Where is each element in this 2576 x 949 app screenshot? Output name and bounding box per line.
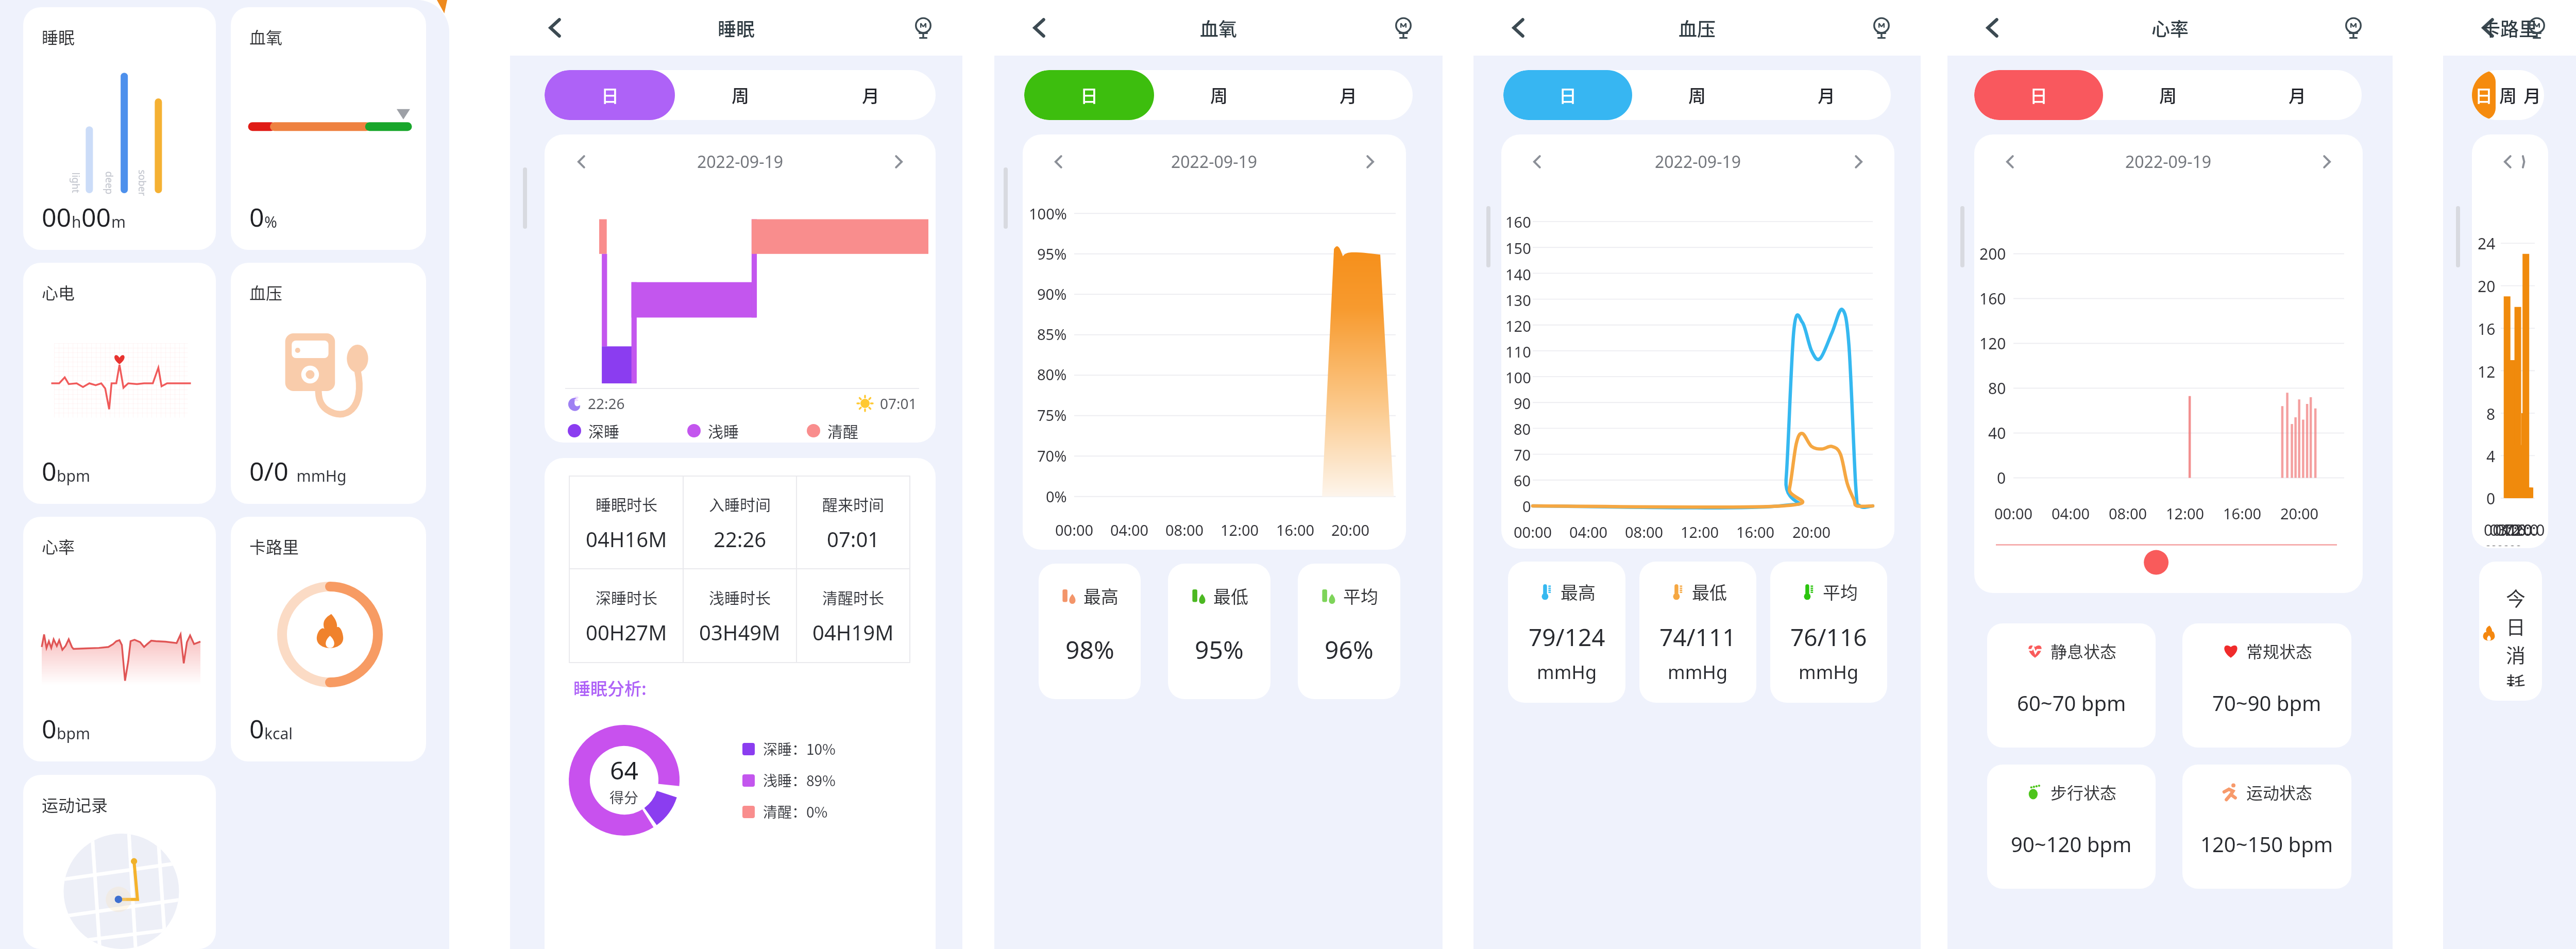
button[interactable]: Previous day <box>1045 148 1072 175</box>
button[interactable]: 最低 <box>1639 562 1756 703</box>
staticText: 最高 <box>1561 579 1596 604</box>
button[interactable]: Previous day <box>1524 148 1551 175</box>
button[interactable]: 周 <box>1632 70 1761 120</box>
button[interactable]: Previous day <box>2495 148 2521 175</box>
button[interactable]: 日 <box>1503 70 1632 120</box>
button[interactable]: Next day <box>2313 148 2340 175</box>
staticText: 20 <box>2478 276 2496 297</box>
button[interactable]: 月 <box>2232 70 2362 120</box>
button[interactable]: 日 <box>2472 70 2496 120</box>
button[interactable]: Next day <box>885 148 912 175</box>
staticText: 70 <box>1514 445 1531 465</box>
button[interactable]: 今日消耗 <box>2479 562 2542 701</box>
button[interactable]: 心电 <box>23 263 216 504</box>
button[interactable]: 日 <box>1024 70 1154 120</box>
staticText: bpm <box>57 723 90 744</box>
staticText: 74/111 <box>1659 621 1736 653</box>
staticText: 100 <box>1505 367 1531 387</box>
staticText: 血压 <box>249 280 283 304</box>
button[interactable]: 血氧 <box>231 7 426 250</box>
button[interactable]: Back <box>539 11 572 44</box>
staticText: 16:00 <box>2223 503 2262 523</box>
button[interactable]: Previous day <box>1997 148 2024 175</box>
staticText: 睡眠分析: <box>573 675 647 700</box>
staticText: 日 <box>2030 82 2047 108</box>
button[interactable]: 周 <box>1154 70 1283 120</box>
staticText: 08:00 <box>2109 503 2147 523</box>
staticText: 00 <box>81 199 111 234</box>
staticText: 入睡时间 <box>709 493 771 515</box>
staticText: 2022-09-19 <box>1171 150 1258 173</box>
staticText: 130 <box>1505 290 1531 310</box>
button[interactable]: Measure <box>1865 11 1898 44</box>
button[interactable]: 常规状态 <box>2182 623 2351 748</box>
staticText: 深睡 <box>588 419 619 442</box>
staticText: 深睡时长 <box>596 586 657 608</box>
button[interactable]: 月 <box>1761 70 1891 120</box>
button[interactable]: 心率 <box>23 517 216 761</box>
button[interactable]: Back <box>1976 11 2009 44</box>
button[interactable]: 日 <box>545 70 675 120</box>
button[interactable]: 平均 <box>1298 564 1400 699</box>
button[interactable]: Next day <box>2521 148 2526 175</box>
button[interactable]: 运动状态 <box>2182 765 2351 889</box>
button[interactable]: 月 <box>805 70 936 120</box>
staticText: 0 <box>42 453 57 488</box>
staticText: 日 <box>601 82 619 108</box>
button[interactable]: Back <box>1023 11 1056 44</box>
staticText: 清醒：0% <box>763 801 828 822</box>
staticText: 12:00 <box>2502 519 2536 546</box>
button[interactable]: Previous day <box>568 148 595 175</box>
button[interactable]: 静息状态 <box>1987 623 2156 748</box>
staticText: 16:00 <box>2508 519 2542 546</box>
staticText: 16 <box>2478 318 2496 340</box>
button[interactable]: 步行状态 <box>1987 765 2156 889</box>
staticText: 12:00 <box>2166 503 2205 523</box>
button[interactable]: 运动记录 <box>23 775 216 949</box>
button[interactable]: 最高 <box>1508 562 1625 703</box>
button[interactable]: Next day <box>1845 148 1872 175</box>
button[interactable]: 最高 <box>1039 564 1141 699</box>
staticText: 04:00 <box>1569 522 1608 542</box>
staticText: 80 <box>1514 419 1531 439</box>
staticText: 07:01 <box>880 394 917 413</box>
button[interactable]: 睡眠 <box>23 7 216 250</box>
staticText: 0 <box>249 199 264 234</box>
staticText: mmHg <box>289 465 347 486</box>
button[interactable]: 血压 <box>231 263 426 504</box>
button[interactable]: Back <box>2472 11 2505 44</box>
button[interactable]: 月 <box>2520 70 2544 120</box>
button[interactable]: 最低 <box>1168 564 1270 699</box>
button[interactable]: 周 <box>675 70 805 120</box>
staticText: 07:00 <box>2496 519 2530 546</box>
button[interactable]: Measure <box>1387 11 1420 44</box>
button[interactable]: Back <box>1502 11 1535 44</box>
staticText: 周 <box>1210 82 1228 108</box>
staticText: 12 <box>2478 361 2496 382</box>
staticText: 64 <box>610 753 638 787</box>
staticText: 心率 <box>42 534 75 558</box>
button[interactable]: 周 <box>2496 70 2520 120</box>
button[interactable]: 平均 <box>1770 562 1887 703</box>
button[interactable]: Measure <box>2337 11 2370 44</box>
staticText: 12:00 <box>1221 520 1259 540</box>
staticText: 浅睡 <box>708 419 739 442</box>
staticText: 月 <box>1818 82 1835 108</box>
button[interactable]: Next day <box>1357 148 1383 175</box>
button[interactable]: 卡路里 <box>231 517 426 761</box>
staticText: 120 <box>1979 333 2006 354</box>
staticText: 200 <box>1979 243 2006 264</box>
button[interactable]: 周 <box>2103 70 2232 120</box>
staticText: 0 <box>1522 496 1531 516</box>
staticText: sober <box>135 170 149 196</box>
staticText: 79/124 <box>1529 621 1605 653</box>
staticText: 00:00 <box>2484 519 2518 546</box>
staticText: 睡眠 <box>42 25 75 48</box>
staticText: 日 <box>1080 82 1098 108</box>
button[interactable]: 日 <box>1974 70 2103 120</box>
button[interactable]: Measure <box>907 11 940 44</box>
staticText: 心率 <box>2151 14 2189 41</box>
staticText: 0 <box>1997 467 2006 488</box>
button[interactable]: Measure <box>2520 11 2553 44</box>
button[interactable]: 月 <box>1283 70 1413 120</box>
